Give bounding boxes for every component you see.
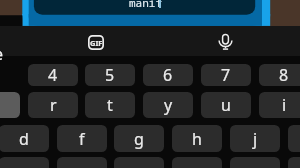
staticText: g bbox=[134, 128, 144, 150]
button[interactable] bbox=[230, 157, 280, 168]
staticText: f bbox=[79, 128, 85, 150]
staticText: 7 bbox=[221, 64, 231, 86]
button[interactable] bbox=[57, 157, 107, 168]
button[interactable]: t bbox=[85, 92, 135, 118]
staticText: e bbox=[0, 43, 4, 65]
staticText: r bbox=[50, 94, 57, 116]
staticText: j bbox=[253, 128, 258, 150]
button[interactable]: 7 bbox=[201, 64, 251, 86]
staticText: 8 bbox=[279, 64, 289, 86]
staticText: i bbox=[282, 94, 287, 116]
staticText: d bbox=[19, 128, 29, 150]
staticText: h bbox=[192, 128, 202, 150]
button[interactable] bbox=[288, 157, 300, 168]
button[interactable]: 8 bbox=[259, 64, 300, 86]
button[interactable]: g bbox=[114, 125, 164, 152]
staticText: 4 bbox=[48, 64, 58, 86]
staticText: t bbox=[107, 94, 113, 116]
staticText: manif bbox=[129, 0, 162, 10]
staticText: GIF bbox=[90, 38, 103, 48]
staticText: y bbox=[164, 94, 173, 116]
button[interactable]: d bbox=[0, 125, 49, 152]
button[interactable]: r bbox=[28, 92, 78, 118]
button[interactable]: u bbox=[201, 92, 251, 118]
button[interactable]: y bbox=[143, 92, 193, 118]
button[interactable]: i bbox=[259, 92, 300, 118]
button[interactable]: Insert GIF bbox=[88, 35, 104, 50]
button[interactable] bbox=[114, 157, 164, 168]
button[interactable]: j bbox=[230, 125, 280, 152]
button[interactable]: Voice input bbox=[213, 32, 238, 52]
button[interactable]: 6 bbox=[143, 64, 193, 86]
staticText: 6 bbox=[163, 64, 173, 86]
staticText: u bbox=[221, 94, 231, 116]
button[interactable]: 5 bbox=[85, 64, 135, 86]
button[interactable]: f bbox=[57, 125, 107, 152]
staticText: 5 bbox=[105, 64, 115, 86]
button[interactable]: k bbox=[288, 125, 300, 152]
button[interactable] bbox=[0, 92, 20, 118]
button[interactable]: h bbox=[172, 125, 222, 152]
button[interactable] bbox=[0, 157, 49, 168]
button[interactable]: 4 bbox=[28, 64, 78, 86]
button[interactable] bbox=[172, 157, 222, 168]
